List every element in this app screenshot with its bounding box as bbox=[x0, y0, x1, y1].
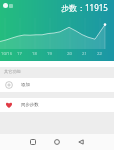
staticText: 其它功能 bbox=[4, 69, 21, 74]
staticText: 10/16 bbox=[1, 51, 13, 57]
staticText: 21 bbox=[82, 51, 87, 57]
button[interactable]: Recents bbox=[27, 136, 39, 148]
staticText: 20 bbox=[67, 51, 72, 57]
button[interactable]: 添加 bbox=[0, 78, 114, 92]
staticText: 步数：11915 bbox=[61, 2, 108, 13]
staticText: 18 bbox=[32, 51, 37, 57]
staticText: 添加 bbox=[21, 82, 30, 88]
button[interactable]: 同步步数 bbox=[0, 98, 114, 112]
staticText: 19 bbox=[47, 51, 52, 57]
button[interactable]: Back bbox=[75, 136, 87, 148]
staticText: 17 bbox=[17, 51, 22, 57]
button[interactable]: Home bbox=[51, 136, 63, 148]
staticText: 同步步数 bbox=[21, 102, 39, 108]
staticText: 22 bbox=[97, 51, 102, 57]
